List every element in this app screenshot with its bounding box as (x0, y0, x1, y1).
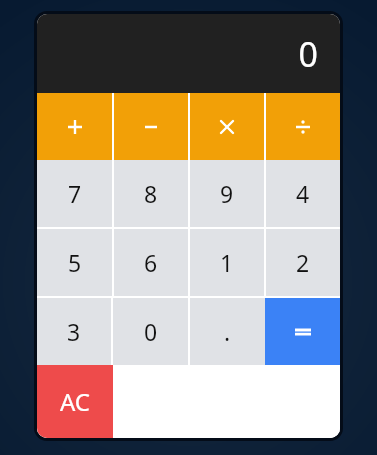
button[interactable]: 7 (37, 160, 112, 227)
button[interactable]: 4 (266, 160, 340, 227)
button[interactable]: AC (37, 365, 113, 438)
staticText: 3 (67, 316, 81, 347)
button[interactable]: 8 (114, 160, 188, 227)
button[interactable]: plus (37, 93, 112, 160)
staticText: 1 (220, 247, 234, 278)
button[interactable]: divide (266, 93, 340, 160)
staticText: 2 (296, 247, 310, 278)
staticText: 7 (68, 178, 82, 209)
button[interactable]: 2 (266, 229, 340, 296)
staticText: 8 (144, 178, 158, 209)
staticText: 6 (144, 247, 158, 278)
staticText: AC (60, 385, 91, 418)
button[interactable]: equals (265, 298, 340, 365)
button[interactable]: minus (114, 93, 188, 160)
staticText: . (224, 316, 231, 347)
button[interactable]: . (190, 298, 265, 365)
button[interactable]: 6 (114, 229, 188, 296)
button[interactable]: 0 (113, 298, 188, 365)
staticText: 5 (68, 247, 82, 278)
staticText: 4 (296, 178, 310, 209)
button[interactable]: 3 (37, 298, 111, 365)
button[interactable]: 1 (190, 229, 264, 296)
button[interactable]: 5 (37, 229, 112, 296)
button[interactable]: 9 (190, 160, 264, 227)
staticText: 9 (220, 178, 234, 209)
staticText: 0 (298, 31, 318, 77)
button[interactable]: multiply (190, 93, 264, 160)
staticText: 0 (144, 316, 158, 347)
